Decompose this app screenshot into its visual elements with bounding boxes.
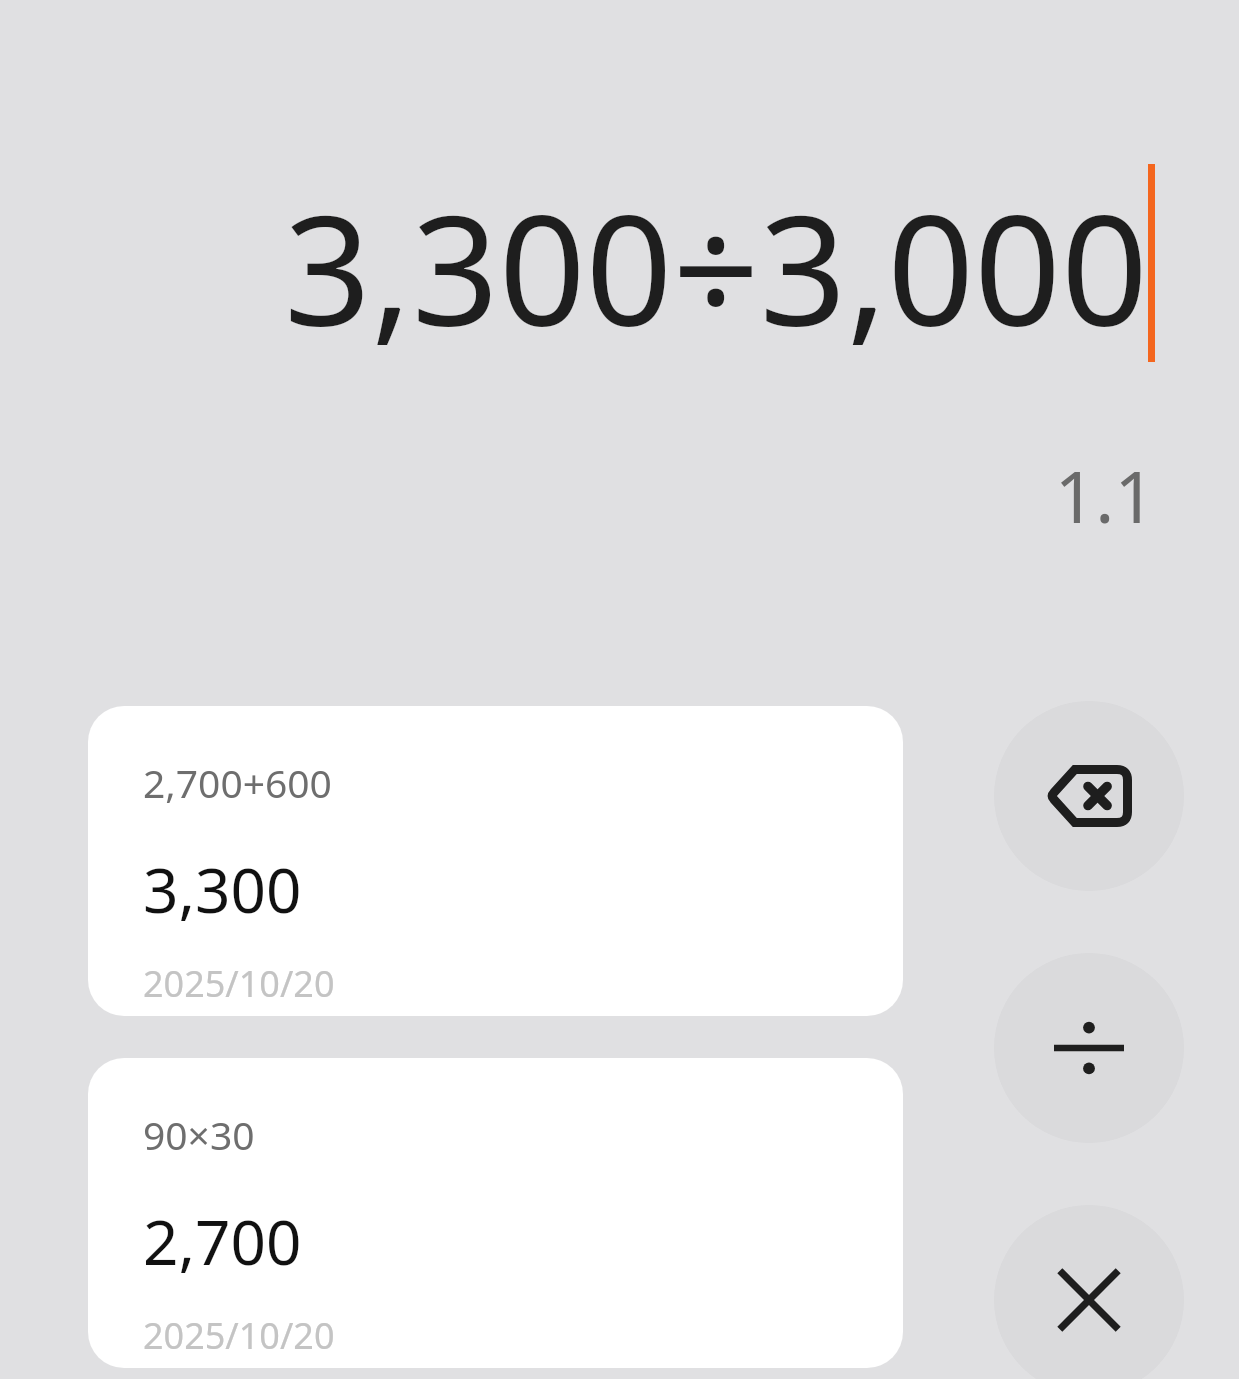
button[interactable]: Divide (994, 953, 1184, 1143)
button[interactable]: Backspace (994, 701, 1184, 891)
staticText: 2025/10/20 (143, 959, 335, 1008)
button[interactable]: Multiply (994, 1205, 1184, 1379)
staticText: 3,300÷3,000 (284, 163, 1148, 363)
button[interactable]: 2,700+600 (88, 706, 903, 1016)
staticText: 1.1 (1054, 447, 1155, 527)
staticText: 2025/10/20 (143, 1311, 335, 1360)
staticText: 2,700 (143, 1199, 302, 1283)
button[interactable]: 90×30 (88, 1058, 903, 1368)
staticText: 90×30 (143, 1108, 255, 1161)
staticText: 2,700+600 (143, 756, 332, 809)
staticText: 3,300 (143, 847, 302, 931)
